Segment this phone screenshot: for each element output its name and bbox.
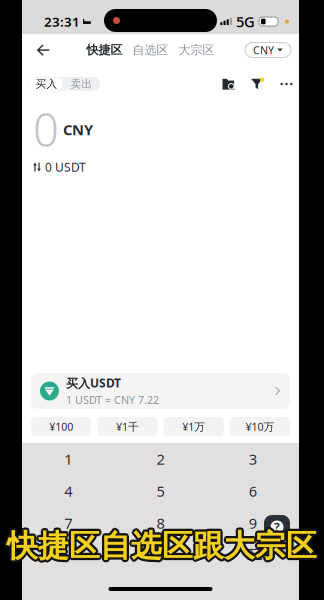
staticText: 5G — [236, 12, 255, 31]
button[interactable]: 买入USDT — [31, 373, 290, 409]
button[interactable]: 0 — [114, 539, 207, 571]
staticText: 1 — [64, 449, 72, 469]
staticText: 2 — [156, 449, 164, 469]
staticText: 大宗区 — [178, 43, 214, 57]
button[interactable]: 1 — [22, 443, 114, 475]
staticText: 1 USDT = CNY 7.22 — [66, 393, 159, 407]
staticText: 7 — [64, 513, 72, 533]
button[interactable]: 卖出 — [64, 77, 99, 91]
staticText: ⌫ — [242, 547, 263, 563]
button[interactable]: ¥10万 — [230, 417, 290, 436]
button[interactable]: CNY — [245, 42, 291, 57]
button[interactable]: Decimal point — [22, 539, 114, 571]
button[interactable]: Filter — [251, 77, 264, 90]
button[interactable]: 5 — [114, 475, 207, 507]
staticText: 4 — [64, 481, 72, 501]
button[interactable]: More — [280, 77, 293, 90]
button[interactable]: 8 — [114, 507, 207, 539]
staticText: 快捷区自选区跟大宗区 — [5, 525, 315, 563]
staticText: 快捷区自选区跟大宗区 — [7, 525, 317, 563]
staticText: 快捷区自选区跟大宗区 — [7, 527, 317, 565]
staticText: 快捷区 — [86, 43, 122, 57]
staticText: 快捷区自选区跟大宗区 — [7, 529, 317, 567]
staticText: 9 — [249, 513, 257, 533]
staticText: 0 USDT — [45, 159, 86, 175]
staticText: CNY — [63, 120, 93, 139]
staticText: 快捷区自选区跟大宗区 — [5, 527, 315, 565]
button[interactable]: 快捷区 — [81, 38, 127, 62]
staticText: 买入 — [35, 77, 57, 90]
button[interactable]: Back — [30, 37, 56, 63]
staticText: ¥1千 — [116, 419, 139, 434]
staticText: 快捷区自选区跟大宗区 — [9, 525, 319, 563]
button[interactable]: 买入 — [29, 77, 64, 91]
staticText: . — [66, 545, 70, 565]
staticText: 3 — [249, 449, 257, 469]
button[interactable]: 大宗区 — [173, 38, 219, 62]
staticText: 5 — [156, 481, 164, 501]
button[interactable]: ¥1万 — [163, 417, 224, 436]
button[interactable]: 7 — [22, 507, 114, 539]
staticText: 0 — [156, 545, 164, 565]
staticText: 自选区 — [132, 43, 168, 57]
button[interactable]: 3 — [207, 443, 299, 475]
staticText: CNY — [253, 43, 274, 57]
button[interactable]: Order history — [222, 77, 235, 90]
button[interactable]: 9 — [207, 507, 299, 539]
button[interactable]: Delete — [207, 539, 299, 571]
button[interactable]: 6 — [207, 475, 299, 507]
staticText: ¥1万 — [182, 419, 205, 434]
staticText: ¥100 — [49, 419, 73, 434]
staticText: 快捷区自选区跟大宗区 — [5, 529, 315, 566]
staticText: ¥10万 — [245, 419, 274, 434]
button[interactable]: ¥1千 — [97, 417, 157, 436]
staticText: 8 — [156, 513, 164, 533]
button[interactable]: Help — [264, 515, 290, 539]
button[interactable]: 4 — [22, 475, 114, 507]
staticText: 快捷区自选区跟大宗区 — [9, 527, 319, 565]
staticText: ? — [274, 519, 280, 535]
staticText: 23:31 — [44, 13, 80, 30]
staticText: 卖出 — [70, 77, 92, 90]
staticText: 买入USDT — [66, 375, 121, 391]
button[interactable]: 自选区 — [127, 38, 173, 62]
staticText: 快捷区自选区跟大宗区 — [9, 529, 319, 566]
staticText: 6 — [249, 481, 257, 501]
button[interactable]: ¥100 — [31, 417, 91, 436]
staticText: 0 — [33, 99, 59, 159]
button[interactable]: 2 — [114, 443, 207, 475]
